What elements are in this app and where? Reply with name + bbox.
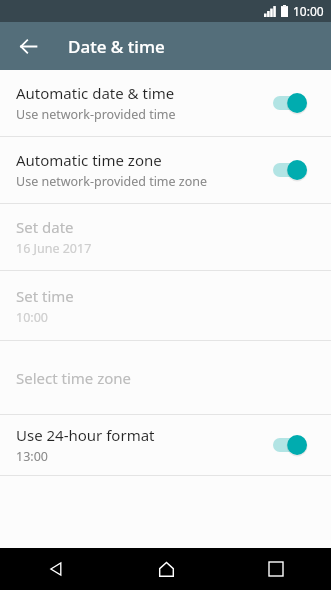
button[interactable]: Home: [111, 548, 221, 590]
staticText: Set time: [16, 286, 74, 306]
button[interactable]: Set time: [0, 271, 331, 340]
button[interactable]: Automatic date & time: [0, 70, 331, 136]
staticText: 10:00: [16, 309, 48, 326]
button[interactable]: Set date: [0, 204, 331, 270]
staticText: 10:00: [293, 3, 324, 19]
staticText: 16 June 2017: [16, 240, 92, 257]
staticText: Use network-provided time zone: [16, 173, 208, 190]
staticText: Set date: [16, 217, 74, 237]
staticText: 13:00: [16, 448, 48, 465]
button[interactable]: Toggle: [273, 430, 315, 460]
button[interactable]: Back: [0, 548, 111, 590]
button[interactable]: Select time zone: [0, 341, 331, 414]
staticText: Automatic date & time: [16, 83, 175, 103]
button[interactable]: Back: [8, 26, 48, 66]
button[interactable]: Use 24-hour format: [0, 415, 331, 475]
staticText: Select time zone: [16, 368, 132, 388]
button[interactable]: Recent apps: [221, 548, 331, 590]
staticText: Use network-provided time: [16, 106, 176, 123]
button[interactable]: Automatic time zone: [0, 137, 331, 203]
button[interactable]: Toggle: [273, 155, 315, 185]
staticText: Automatic time zone: [16, 150, 162, 170]
staticText: Use 24-hour format: [16, 425, 155, 445]
staticText: Date & time: [68, 35, 165, 58]
button[interactable]: Toggle: [273, 88, 315, 118]
